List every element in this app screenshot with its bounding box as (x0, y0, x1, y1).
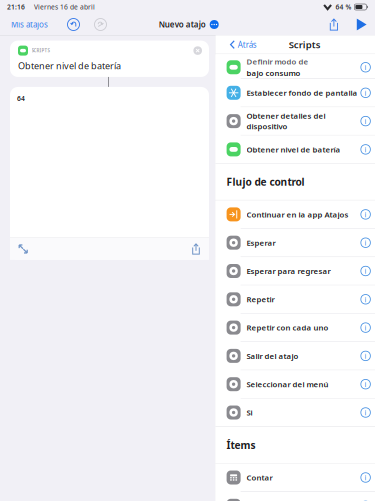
staticText: Obtener nivel de batería (247, 144, 341, 155)
staticText: i (365, 323, 367, 333)
button[interactable]: SCRIPTS (10, 41, 209, 77)
staticText: i (365, 144, 367, 154)
staticText: Seleccionar del menú (247, 379, 329, 389)
button[interactable]: Deshacer (67, 18, 80, 31)
staticText: Repetir (247, 294, 275, 304)
staticText: 64 % (335, 2, 351, 12)
staticText: i (365, 238, 367, 248)
button[interactable]: Establecer fondo de pantalla (216, 79, 375, 107)
button[interactable]: Continuar en la app Atajos (216, 201, 375, 228)
button[interactable]: Salir del atajo (216, 342, 375, 370)
button[interactable]: Atrás (230, 35, 257, 54)
button[interactable]: Seleccionar del menú (216, 370, 375, 398)
staticText: i (365, 407, 367, 417)
button[interactable]: Esperar para regresar (216, 257, 375, 285)
button[interactable]: Ampliar resultado (14, 239, 32, 259)
staticText: 21:16 (7, 2, 25, 12)
staticText: Nuevo atajo (159, 19, 206, 30)
staticText: i (365, 266, 367, 276)
staticText: Contar (247, 472, 273, 483)
button[interactable]: Contar (216, 464, 375, 491)
button[interactable]: Opciones del atajo (210, 20, 219, 29)
button[interactable]: Definir modo de (216, 54, 375, 78)
staticText: Si (247, 407, 253, 418)
staticText: i (365, 294, 367, 304)
staticText: Continuar en la app Atajos (247, 209, 349, 220)
button[interactable]: Mis atajos (11, 15, 48, 34)
button[interactable]: Obtener detalles del dispositivo (216, 107, 375, 135)
button[interactable]: Obtener elemento de la lista (216, 492, 375, 501)
staticText: Repetir con cada uno (247, 322, 329, 333)
button[interactable]: Repetir con cada uno (216, 314, 375, 341)
staticText: Obtener detalles del dispositivo (247, 111, 326, 132)
staticText: i (365, 116, 367, 126)
staticText: Scripts (289, 38, 321, 51)
staticText: Viernes 16 de abril (34, 2, 95, 12)
staticText: Esperar (247, 237, 276, 248)
button[interactable]: Si (216, 399, 375, 426)
button[interactable]: Rehacer (94, 18, 107, 31)
staticText: Flujo de control (227, 175, 305, 189)
staticText: i (365, 88, 367, 98)
staticText: Esperar para regresar (247, 266, 331, 276)
staticText: Definir modo de (247, 56, 309, 67)
button[interactable]: Repetir (216, 285, 375, 313)
staticText: i (365, 379, 367, 389)
staticText: Establecer fondo de pantalla (247, 87, 358, 98)
button[interactable]: Reproducir (356, 18, 367, 31)
staticText: i (365, 209, 367, 219)
button[interactable]: Compartir resultado (187, 239, 205, 259)
staticText: i (365, 62, 367, 72)
staticText: i (365, 472, 367, 482)
staticText: SCRIPTS (31, 47, 49, 54)
staticText: i (365, 351, 367, 361)
staticText: Obtener nivel de batería (18, 60, 121, 72)
staticText: Atrás (238, 39, 257, 50)
staticText: Salir del atajo (247, 351, 299, 361)
button[interactable]: Compartir (328, 18, 339, 31)
staticText: bajo consumo (247, 68, 301, 78)
staticText: Mis atajos (11, 19, 48, 30)
staticText: 64 (17, 94, 25, 103)
button[interactable]: Esperar (216, 229, 375, 256)
button[interactable]: Obtener nivel de batería (216, 136, 375, 163)
staticText: Ítems (227, 438, 256, 452)
